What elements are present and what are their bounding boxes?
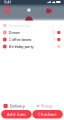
- staticText: Grocery list: [9, 23, 30, 28]
- staticText: Add item: [7, 112, 26, 117]
- button[interactable]: Dinner: [0, 29, 64, 36]
- button[interactable]: Birthday party: [0, 43, 64, 50]
- staticText: Checkout: [38, 112, 57, 117]
- staticText: 3: [53, 38, 55, 41]
- button[interactable]: Add item: [1, 110, 32, 118]
- button[interactable]: Delivery: [0, 102, 64, 110]
- button[interactable]: Checkout: [32, 110, 63, 118]
- staticText: Coffee beans: [9, 37, 32, 42]
- staticText: Birthday party: [9, 44, 34, 49]
- staticText: Delivery: [10, 103, 25, 109]
- staticText: 12: [51, 31, 55, 34]
- staticText: Dinner: [9, 30, 21, 35]
- staticText: 9:41: [4, 0, 11, 5]
- button[interactable]: Menu: [2, 6, 11, 14]
- staticText: Pickup: [41, 103, 52, 109]
- button[interactable]: Grocery list: [0, 22, 64, 29]
- button[interactable]: Coffee beans: [0, 36, 64, 43]
